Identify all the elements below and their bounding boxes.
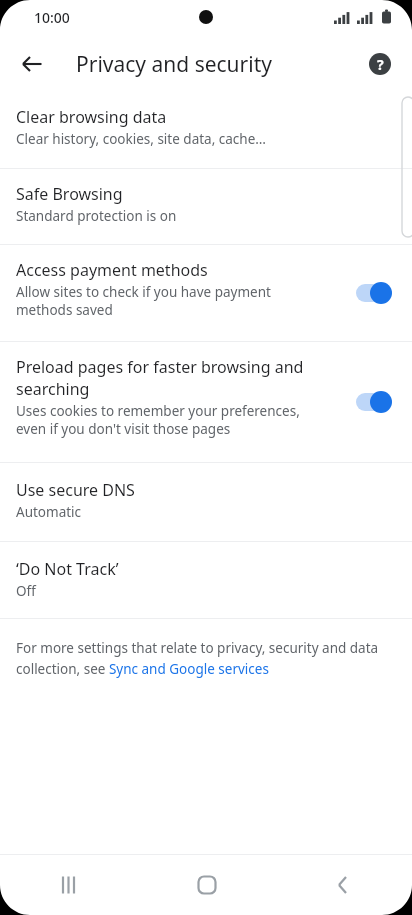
staticText: Automatic	[16, 503, 82, 521]
staticText: Uses cookies to remember your preference…	[16, 402, 300, 438]
button[interactable]: Back	[8, 40, 56, 88]
button[interactable]: ‘Do Not Track’	[0, 542, 412, 618]
button[interactable]: Access payment methods	[0, 245, 412, 341]
button[interactable]: Home	[138, 855, 275, 915]
staticText: Access payment methods	[16, 259, 208, 281]
button[interactable]: Use secure DNS	[0, 463, 412, 541]
button[interactable]: Access payment methods	[354, 276, 398, 310]
button[interactable]: Preload pages for faster browsing and se…	[354, 385, 398, 419]
staticText: Use secure DNS	[16, 479, 135, 501]
staticText: ?	[377, 55, 384, 74]
button[interactable]: Back	[275, 855, 412, 915]
button[interactable]: Clear browsing data	[0, 94, 412, 168]
staticText: Allow sites to check if you have payment…	[16, 283, 271, 319]
staticText: Off	[16, 582, 36, 600]
button[interactable]: Safe Browsing	[0, 169, 412, 244]
staticText: For more settings that relate to privacy…	[16, 639, 394, 678]
staticText: 10:00	[34, 8, 70, 27]
staticText: Preload pages for faster browsing and se…	[16, 356, 304, 400]
button[interactable]: Recents	[0, 855, 138, 915]
button[interactable]: Help	[358, 42, 402, 86]
staticText: Safe Browsing	[16, 183, 123, 205]
staticText: Clear history, cookies, site data, cache…	[16, 130, 266, 148]
staticText: Standard protection is on	[16, 207, 177, 225]
staticText: Privacy and security	[76, 50, 272, 79]
button[interactable]: Preload pages for faster browsing and se…	[0, 342, 412, 462]
staticText: Clear browsing data	[16, 106, 167, 128]
staticText: ‘Do Not Track’	[16, 558, 119, 580]
button[interactable]: For more settings that relate to privacy…	[16, 639, 394, 678]
